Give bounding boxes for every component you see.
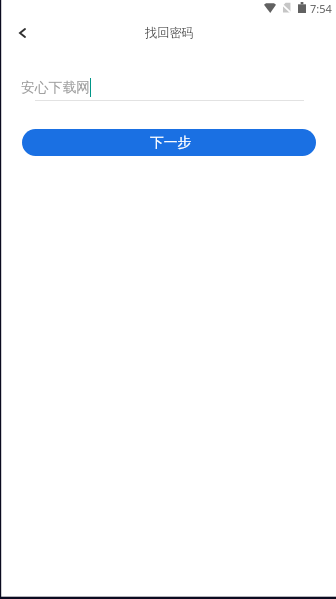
staticText: 7:54 bbox=[310, 1, 332, 16]
staticText: 安心下载网 bbox=[21, 79, 90, 96]
button[interactable]: 下一步 bbox=[22, 129, 316, 156]
staticText: 下一步 bbox=[150, 134, 192, 151]
button[interactable]: Back bbox=[4, 13, 40, 53]
button[interactable]: 安心下载网 bbox=[21, 74, 305, 101]
staticText: 找回密码 bbox=[145, 25, 194, 40]
